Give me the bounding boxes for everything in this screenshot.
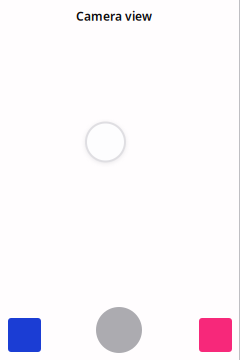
button[interactable]: Shutter: [96, 307, 142, 353]
button[interactable]: Photo library: [8, 318, 41, 352]
staticText: Camera view: [76, 8, 152, 24]
button[interactable]: Switch camera: [199, 318, 232, 352]
